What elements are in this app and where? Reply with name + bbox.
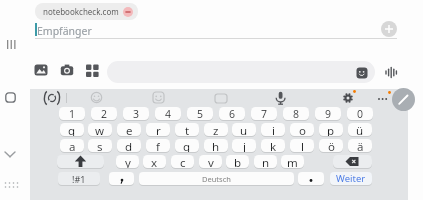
staticText: i xyxy=(272,123,275,136)
button[interactable]: 7 xyxy=(251,107,277,120)
button[interactable]: !#1 xyxy=(58,172,100,185)
button[interactable]: 5 xyxy=(187,107,213,120)
staticText: v xyxy=(208,155,214,168)
button[interactable]: v xyxy=(199,155,222,168)
staticText: t xyxy=(185,123,190,136)
button[interactable]: 6 xyxy=(219,107,245,120)
button[interactable]: Weiter xyxy=(330,172,372,185)
button[interactable] xyxy=(341,91,355,105)
staticText: b xyxy=(234,155,242,168)
button[interactable]: s xyxy=(88,139,112,152)
button[interactable]: t xyxy=(175,123,199,136)
button[interactable]: l xyxy=(290,139,314,152)
button[interactable] xyxy=(107,61,375,83)
staticText: 2 xyxy=(101,107,108,120)
button[interactable] xyxy=(392,88,415,111)
staticText: c xyxy=(180,155,186,168)
staticText: Deutsch xyxy=(202,174,231,184)
button[interactable]: a xyxy=(60,139,84,152)
button[interactable]: i xyxy=(261,123,285,136)
staticText: m xyxy=(287,155,298,168)
staticText: 1 xyxy=(69,107,76,120)
button[interactable]: z xyxy=(204,123,228,136)
staticText: j xyxy=(243,139,246,152)
button[interactable]: n xyxy=(254,155,277,168)
staticText: 5 xyxy=(197,107,204,120)
staticText: 0 xyxy=(357,107,364,120)
staticText: p xyxy=(327,123,335,136)
button[interactable]: 0 xyxy=(347,107,373,120)
button[interactable] xyxy=(109,172,134,185)
staticText: 8 xyxy=(293,107,300,120)
button[interactable] xyxy=(377,96,390,102)
staticText: x xyxy=(151,155,158,168)
staticText: y xyxy=(125,155,131,168)
button[interactable]: c xyxy=(171,155,194,168)
button[interactable]: r xyxy=(146,123,170,136)
staticText: 4 xyxy=(165,107,172,120)
button[interactable]: x xyxy=(143,155,166,168)
staticText: q xyxy=(68,123,76,136)
staticText: ö xyxy=(328,139,335,152)
button[interactable] xyxy=(57,155,104,168)
button[interactable]: 3 xyxy=(123,107,149,120)
button[interactable]: 1 xyxy=(59,107,85,120)
button[interactable]: h xyxy=(204,139,228,152)
button[interactable]: 2 xyxy=(91,107,117,120)
button[interactable] xyxy=(298,172,324,185)
button[interactable]: o xyxy=(290,123,314,136)
staticText: s xyxy=(97,139,103,152)
staticText: 3 xyxy=(133,107,140,120)
staticText: Weiter xyxy=(336,172,366,185)
button[interactable] xyxy=(34,63,48,77)
button[interactable]: m xyxy=(281,155,304,168)
button[interactable] xyxy=(90,91,103,104)
staticText: l xyxy=(301,139,304,152)
button[interactable] xyxy=(86,64,99,77)
staticText: o xyxy=(299,123,306,136)
button[interactable]: Deutsch xyxy=(139,172,294,185)
button[interactable]: ö xyxy=(319,139,343,152)
button[interactable]: p xyxy=(319,123,343,136)
button[interactable]: 4 xyxy=(155,107,181,120)
staticText: notebookcheck.com xyxy=(43,6,119,17)
button[interactable]: notebookcheck.com xyxy=(35,3,138,20)
staticText: !#1 xyxy=(72,173,86,185)
button[interactable] xyxy=(5,92,16,103)
staticText: ü xyxy=(356,123,364,136)
staticText: n xyxy=(262,155,270,168)
button[interactable]: e xyxy=(117,123,141,136)
button[interactable]: j xyxy=(232,139,256,152)
button[interactable] xyxy=(385,66,398,79)
button[interactable]: ü xyxy=(348,123,372,136)
button[interactable] xyxy=(356,67,368,79)
button[interactable] xyxy=(381,21,397,37)
staticText: z xyxy=(213,123,219,136)
staticText: 7 xyxy=(261,107,268,120)
button[interactable]: w xyxy=(88,123,112,136)
button[interactable]: g xyxy=(175,139,199,152)
staticText: k xyxy=(270,139,277,152)
staticText: e xyxy=(126,123,133,136)
button[interactable]: b xyxy=(226,155,249,168)
staticText: g xyxy=(183,139,191,152)
button[interactable]: f xyxy=(146,139,170,152)
button[interactable] xyxy=(44,90,60,106)
button[interactable]: k xyxy=(261,139,285,152)
button[interactable]: d xyxy=(117,139,141,152)
button[interactable]: y xyxy=(116,155,139,168)
staticText: ä xyxy=(357,139,364,152)
button[interactable] xyxy=(333,155,372,168)
button[interactable] xyxy=(214,93,228,104)
button[interactable] xyxy=(4,150,16,159)
button[interactable]: 8 xyxy=(283,107,309,120)
button[interactable]: ä xyxy=(348,139,372,152)
button[interactable]: q xyxy=(60,123,84,136)
button[interactable] xyxy=(274,91,287,105)
staticText: 9 xyxy=(325,107,332,120)
button[interactable] xyxy=(60,63,74,77)
staticText: a xyxy=(69,139,76,152)
button[interactable] xyxy=(152,91,165,104)
button[interactable]: u xyxy=(232,123,256,136)
button[interactable]: 9 xyxy=(315,107,341,120)
